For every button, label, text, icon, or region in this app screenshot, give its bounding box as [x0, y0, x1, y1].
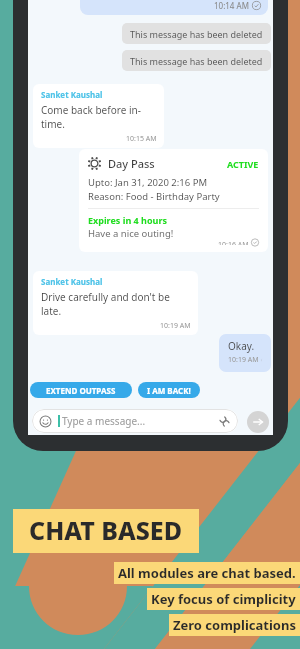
staticText: 10:14 AM — [214, 0, 249, 11]
staticText: Sanket Kaushal — [41, 276, 103, 287]
button[interactable]: EXTEND OUTPASS — [30, 382, 132, 398]
staticText: 10:16 AM — [218, 240, 249, 245]
staticText: CHAT BASED — [29, 513, 183, 547]
staticText: Key focus of cimplicity — [151, 590, 296, 608]
staticText: Okay. — [228, 339, 255, 353]
staticText: Sanket Kaushal — [41, 89, 103, 100]
staticText: Zero complications — [173, 616, 296, 634]
staticText: EXTEND OUTPASS — [46, 385, 116, 396]
staticText: 10:19 AM — [160, 321, 191, 331]
staticText: Drive carefully and don't be late. — [41, 290, 191, 318]
staticText: This message has been deleted — [130, 28, 263, 40]
staticText: Have a nice outing! — [88, 227, 174, 240]
button[interactable]: Send — [247, 411, 269, 433]
staticText: All modules are chat based. — [118, 564, 296, 582]
staticText: Upto: Jan 31, 2020 2:16 PM — [88, 176, 208, 189]
staticText: I AM BACK! — [147, 385, 191, 396]
staticText: Type a message... — [62, 414, 146, 428]
staticText: ACTIVE — [227, 158, 259, 170]
staticText: 10:15 AM — [126, 134, 157, 144]
staticText: This message has been deleted — [130, 55, 263, 67]
staticText: Come back before in-time. — [41, 103, 157, 131]
staticText: Reason: Food - Birthday Party — [88, 190, 220, 203]
staticText: Expires in 4 hours — [88, 214, 167, 226]
button[interactable]: I AM BACK! — [138, 382, 200, 398]
staticText: 10:19 AM — [228, 355, 259, 365]
staticText: Day Pass — [108, 156, 155, 171]
button[interactable]: Type a message... — [32, 409, 238, 433]
